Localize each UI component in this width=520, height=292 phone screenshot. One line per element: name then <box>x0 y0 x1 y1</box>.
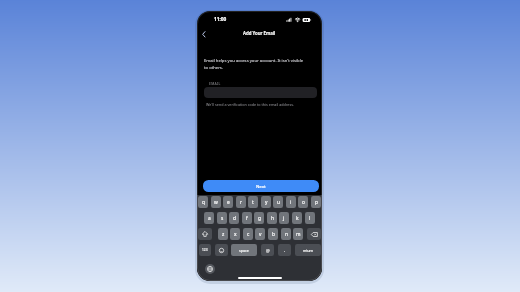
button[interactable]: f <box>242 212 252 224</box>
button[interactable]: @ <box>261 244 274 256</box>
staticText: k <box>296 215 299 222</box>
button[interactable]: m <box>293 228 303 240</box>
staticText: . <box>284 247 286 253</box>
staticText: 123 <box>202 248 208 252</box>
button[interactable]: j <box>279 212 289 224</box>
button[interactable]: 123 <box>199 244 211 256</box>
button[interactable]: d <box>229 212 239 224</box>
button[interactable]: y <box>261 196 271 208</box>
staticText: g <box>258 215 261 222</box>
staticText: u <box>277 199 280 206</box>
button[interactable]: s <box>217 212 227 224</box>
staticText: l <box>309 215 311 222</box>
staticText: m <box>296 231 301 238</box>
staticText: z <box>222 231 225 238</box>
staticText: y <box>265 199 268 206</box>
button[interactable]: h <box>267 212 277 224</box>
button[interactable] <box>198 228 212 240</box>
button[interactable]: Next <box>203 180 319 192</box>
button[interactable] <box>307 228 321 240</box>
staticText: v <box>259 231 262 238</box>
button[interactable]: n <box>281 228 291 240</box>
button[interactable]: . <box>278 244 291 256</box>
staticText: EMAIL <box>209 81 221 86</box>
staticText: space <box>239 248 249 253</box>
button[interactable]: z <box>218 228 228 240</box>
staticText: j <box>283 215 285 222</box>
staticText: i <box>290 199 292 206</box>
button[interactable]: l <box>305 212 315 224</box>
staticText: d <box>233 215 236 222</box>
button[interactable]: k <box>292 212 302 224</box>
staticText: 11:00 <box>214 16 227 23</box>
button[interactable]: p <box>311 196 321 208</box>
staticText: q <box>202 199 205 206</box>
button[interactable] <box>215 244 228 256</box>
button[interactable]: b <box>268 228 278 240</box>
staticText: r <box>240 199 242 206</box>
staticText: Email helps you access your account. It … <box>204 58 304 70</box>
staticText: a <box>208 215 211 222</box>
button[interactable]: space <box>231 244 257 256</box>
staticText: return <box>303 248 314 253</box>
button[interactable]: t <box>248 196 258 208</box>
button[interactable]: u <box>273 196 283 208</box>
button[interactable] <box>202 31 206 38</box>
button[interactable] <box>204 87 317 98</box>
button[interactable]: r <box>236 196 246 208</box>
button[interactable]: q <box>198 196 208 208</box>
staticText: p <box>315 199 318 206</box>
button[interactable]: w <box>211 196 221 208</box>
staticText: Add Your Email <box>243 30 276 36</box>
staticText: s <box>221 215 224 222</box>
button[interactable]: g <box>254 212 264 224</box>
button[interactable]: x <box>230 228 240 240</box>
button[interactable]: a <box>204 212 214 224</box>
button[interactable]: v <box>255 228 265 240</box>
button[interactable]: c <box>243 228 253 240</box>
button[interactable] <box>205 264 215 274</box>
button[interactable]: e <box>223 196 233 208</box>
staticText: b <box>272 231 275 238</box>
staticText: We'll send a verification code to this e… <box>206 102 294 107</box>
staticText: n <box>285 231 288 238</box>
staticText: c <box>247 231 250 238</box>
button[interactable]: i <box>286 196 296 208</box>
staticText: w <box>214 199 218 206</box>
staticText: t <box>252 199 254 206</box>
staticText: @ <box>266 248 270 253</box>
staticText: h <box>271 215 274 222</box>
staticText: e <box>227 199 230 206</box>
staticText: f <box>246 215 248 222</box>
button[interactable]: return <box>295 244 321 256</box>
staticText: o <box>302 199 305 206</box>
staticText: x <box>234 231 237 238</box>
staticText: Next <box>256 183 266 189</box>
button[interactable]: o <box>298 196 308 208</box>
